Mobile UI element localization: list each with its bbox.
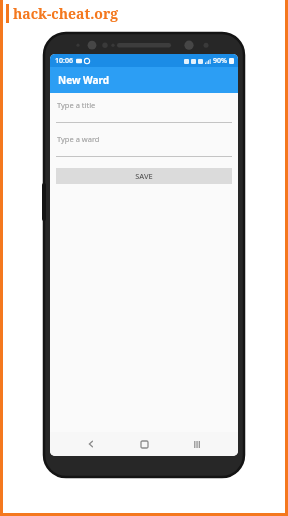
button[interactable]: Back [79,432,103,456]
staticText: New Ward [58,73,110,87]
staticText: SAVE [135,171,153,181]
staticText: 10:06 [55,56,73,66]
button[interactable]: Type a ward [56,134,232,157]
button[interactable]: SAVE [56,168,232,184]
staticText: hack-cheat.org [13,4,119,23]
staticText: Type a ward [57,134,100,144]
button[interactable]: Type a title [56,100,232,123]
button[interactable]: Recent apps [185,432,209,456]
staticText: Type a title [57,100,96,110]
staticText: 90% [213,56,227,66]
button[interactable]: Home [132,432,156,456]
